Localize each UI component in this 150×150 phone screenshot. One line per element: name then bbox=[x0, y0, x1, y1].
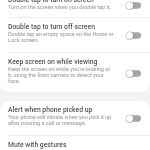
staticText: Double tap to turn off screen bbox=[8, 23, 95, 30]
staticText: Alert when phone picked up bbox=[8, 106, 93, 113]
button[interactable]: Double tap to turn on screen bbox=[0, 0, 150, 17]
button[interactable]: Toggle bbox=[126, 69, 141, 78]
button[interactable]: Toggle bbox=[126, 31, 141, 40]
button[interactable]: Toggle bbox=[126, 1, 141, 10]
staticText: Double tap an empty space on the Home or… bbox=[8, 31, 115, 43]
button[interactable]: Mute with gestures bbox=[0, 136, 150, 150]
staticText: Double tap to turn on screen bbox=[8, 0, 94, 3]
button[interactable]: Double tap to turn off screen bbox=[0, 18, 150, 52]
staticText: Your phone will vibrate when you pick it… bbox=[8, 114, 115, 126]
staticText: Mute with gestures bbox=[8, 141, 67, 148]
button[interactable]: Alert when phone picked up bbox=[0, 101, 150, 135]
staticText: Turn on the screen when you double tap i… bbox=[8, 4, 112, 10]
button[interactable]: Keep screen on while viewing bbox=[0, 53, 150, 92]
button[interactable]: Toggle bbox=[126, 114, 141, 123]
staticText: Keep the screen on while you're looking … bbox=[8, 66, 115, 84]
staticText: Keep screen on while viewing bbox=[8, 58, 98, 65]
